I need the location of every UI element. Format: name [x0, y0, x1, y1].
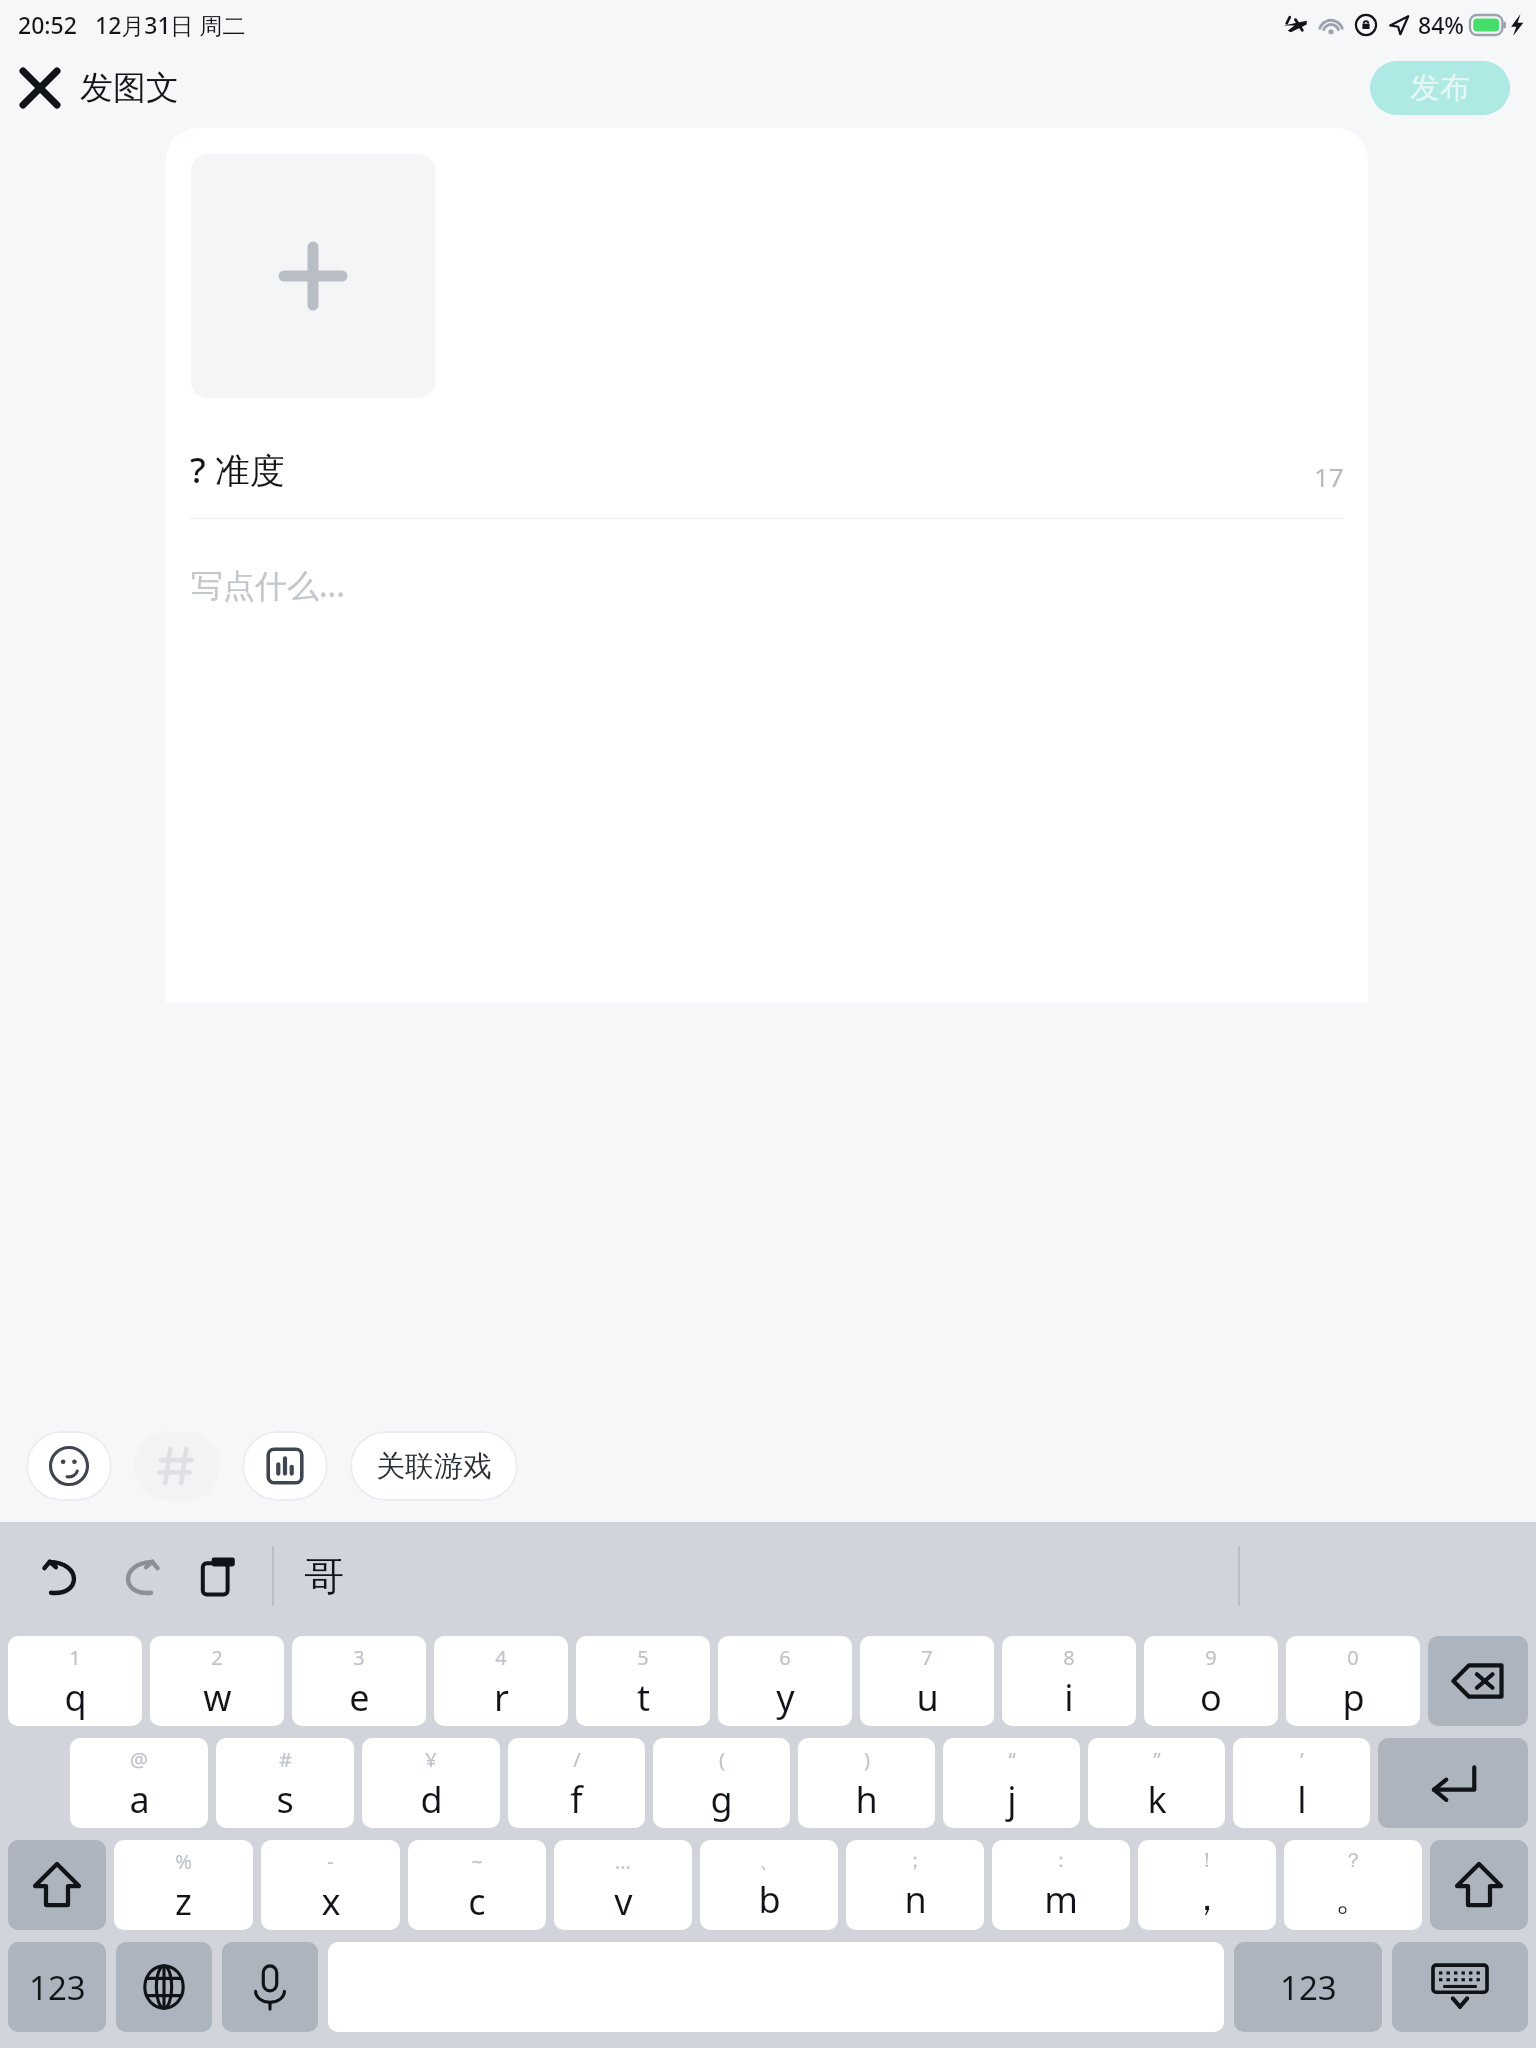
- button[interactable]: 哥: [304, 1551, 344, 1601]
- button[interactable]: @: [70, 1738, 208, 1828]
- staticText: 发图文: [80, 67, 179, 109]
- staticText: x: [321, 1877, 341, 1926]
- staticText: ：: [1051, 1848, 1071, 1873]
- staticText: ¥: [425, 1746, 437, 1773]
- staticText: #: [279, 1746, 292, 1773]
- staticText: y: [776, 1673, 795, 1722]
- staticText: 9: [1205, 1644, 1217, 1671]
- button[interactable]: Switch language: [116, 1942, 212, 2032]
- button[interactable]: Vote: [242, 1431, 328, 1501]
- staticText: @: [130, 1746, 148, 1773]
- staticText: 20:52: [18, 9, 77, 40]
- button[interactable]: Redo: [108, 1544, 172, 1608]
- staticText: 6: [779, 1644, 791, 1671]
- staticText: n: [904, 1875, 927, 1924]
- button[interactable]: 关联游戏: [350, 1431, 518, 1501]
- staticText: 5: [637, 1644, 649, 1671]
- button[interactable]: Topic: [134, 1431, 220, 1501]
- button[interactable]: (: [653, 1738, 790, 1828]
- button[interactable]: 9: [1144, 1636, 1278, 1726]
- staticText: j: [1007, 1775, 1017, 1824]
- staticText: q: [64, 1673, 87, 1722]
- staticText: 发布: [1410, 69, 1470, 107]
- staticText: a: [129, 1775, 150, 1824]
- staticText: v: [614, 1877, 633, 1926]
- button[interactable]: ¥: [362, 1738, 500, 1828]
- button[interactable]: 4: [434, 1636, 568, 1726]
- button[interactable]: 6: [718, 1636, 852, 1726]
- button[interactable]: /: [508, 1738, 645, 1828]
- button[interactable]: ”: [1088, 1738, 1225, 1828]
- staticText: …: [615, 1848, 631, 1875]
- button[interactable]: 写点什么...: [191, 563, 345, 607]
- staticText: -: [327, 1848, 334, 1875]
- button[interactable]: %: [114, 1840, 253, 1930]
- staticText: 4: [495, 1644, 507, 1671]
- staticText: 12月31日 周二: [95, 9, 246, 40]
- staticText: 0: [1347, 1644, 1359, 1671]
- button[interactable]: #: [216, 1738, 354, 1828]
- staticText: 123: [29, 1965, 86, 2010]
- staticText: ？: [1343, 1848, 1363, 1873]
- button[interactable]: Voice input: [222, 1942, 318, 2032]
- button[interactable]: ；: [846, 1840, 984, 1930]
- button[interactable]: …: [554, 1840, 692, 1930]
- button[interactable]: 5: [576, 1636, 710, 1726]
- staticText: ”: [1153, 1746, 1161, 1773]
- staticText: c: [468, 1877, 486, 1926]
- button[interactable]: Backspace: [1428, 1636, 1528, 1726]
- button[interactable]: Shift: [8, 1840, 106, 1930]
- button[interactable]: ’: [1233, 1738, 1370, 1828]
- staticText: 84%: [1418, 9, 1464, 40]
- staticText: l: [1297, 1775, 1307, 1824]
- staticText: (: [719, 1746, 725, 1773]
- staticText: 8: [1063, 1644, 1075, 1671]
- button[interactable]: 2: [150, 1636, 284, 1726]
- button[interactable]: Numbers: [8, 1942, 106, 2032]
- button[interactable]: 、: [700, 1840, 838, 1930]
- button[interactable]: 7: [860, 1636, 994, 1726]
- button[interactable]: ): [798, 1738, 935, 1828]
- button[interactable]: Close: [0, 48, 80, 128]
- button[interactable]: Undo: [30, 1544, 94, 1608]
- button[interactable]: 1: [8, 1636, 142, 1726]
- button[interactable]: Enter: [1378, 1738, 1528, 1828]
- staticText: 。: [1335, 1875, 1371, 1920]
- button[interactable]: Add image: [191, 154, 435, 398]
- staticText: %: [175, 1848, 192, 1875]
- button[interactable]: Hide keyboard: [1392, 1942, 1528, 2032]
- button[interactable]: ~: [408, 1840, 546, 1930]
- button[interactable]: 发布: [1370, 61, 1510, 115]
- staticText: t: [637, 1673, 650, 1722]
- button[interactable]: Clipboard: [186, 1544, 250, 1608]
- staticText: 3: [353, 1644, 365, 1671]
- staticText: ~: [471, 1848, 483, 1875]
- staticText: e: [349, 1673, 370, 1722]
- staticText: ? 准度: [190, 446, 285, 494]
- staticText: b: [758, 1875, 781, 1924]
- button[interactable]: 0: [1286, 1636, 1420, 1726]
- staticText: “: [1008, 1746, 1016, 1773]
- staticText: 7: [921, 1644, 933, 1671]
- staticText: d: [420, 1775, 443, 1824]
- button[interactable]: ！: [1138, 1840, 1276, 1930]
- button[interactable]: Emoji: [26, 1431, 112, 1501]
- button[interactable]: Numbers: [1234, 1942, 1382, 2032]
- staticText: o: [1200, 1673, 1222, 1722]
- staticText: 关联游戏: [376, 1448, 492, 1485]
- staticText: s: [276, 1775, 294, 1824]
- button[interactable]: 8: [1002, 1636, 1136, 1726]
- button[interactable]: ：: [992, 1840, 1130, 1930]
- staticText: 、: [759, 1848, 779, 1873]
- button[interactable]: ？: [1284, 1840, 1422, 1930]
- button[interactable]: 3: [292, 1636, 426, 1726]
- button[interactable]: Shift: [1430, 1840, 1528, 1930]
- button[interactable]: -: [261, 1840, 400, 1930]
- button[interactable]: “: [943, 1738, 1080, 1828]
- staticText: ，: [1189, 1875, 1225, 1920]
- staticText: ！: [1197, 1848, 1217, 1873]
- staticText: 2: [211, 1644, 223, 1671]
- staticText: g: [710, 1775, 733, 1824]
- staticText: w: [203, 1673, 232, 1722]
